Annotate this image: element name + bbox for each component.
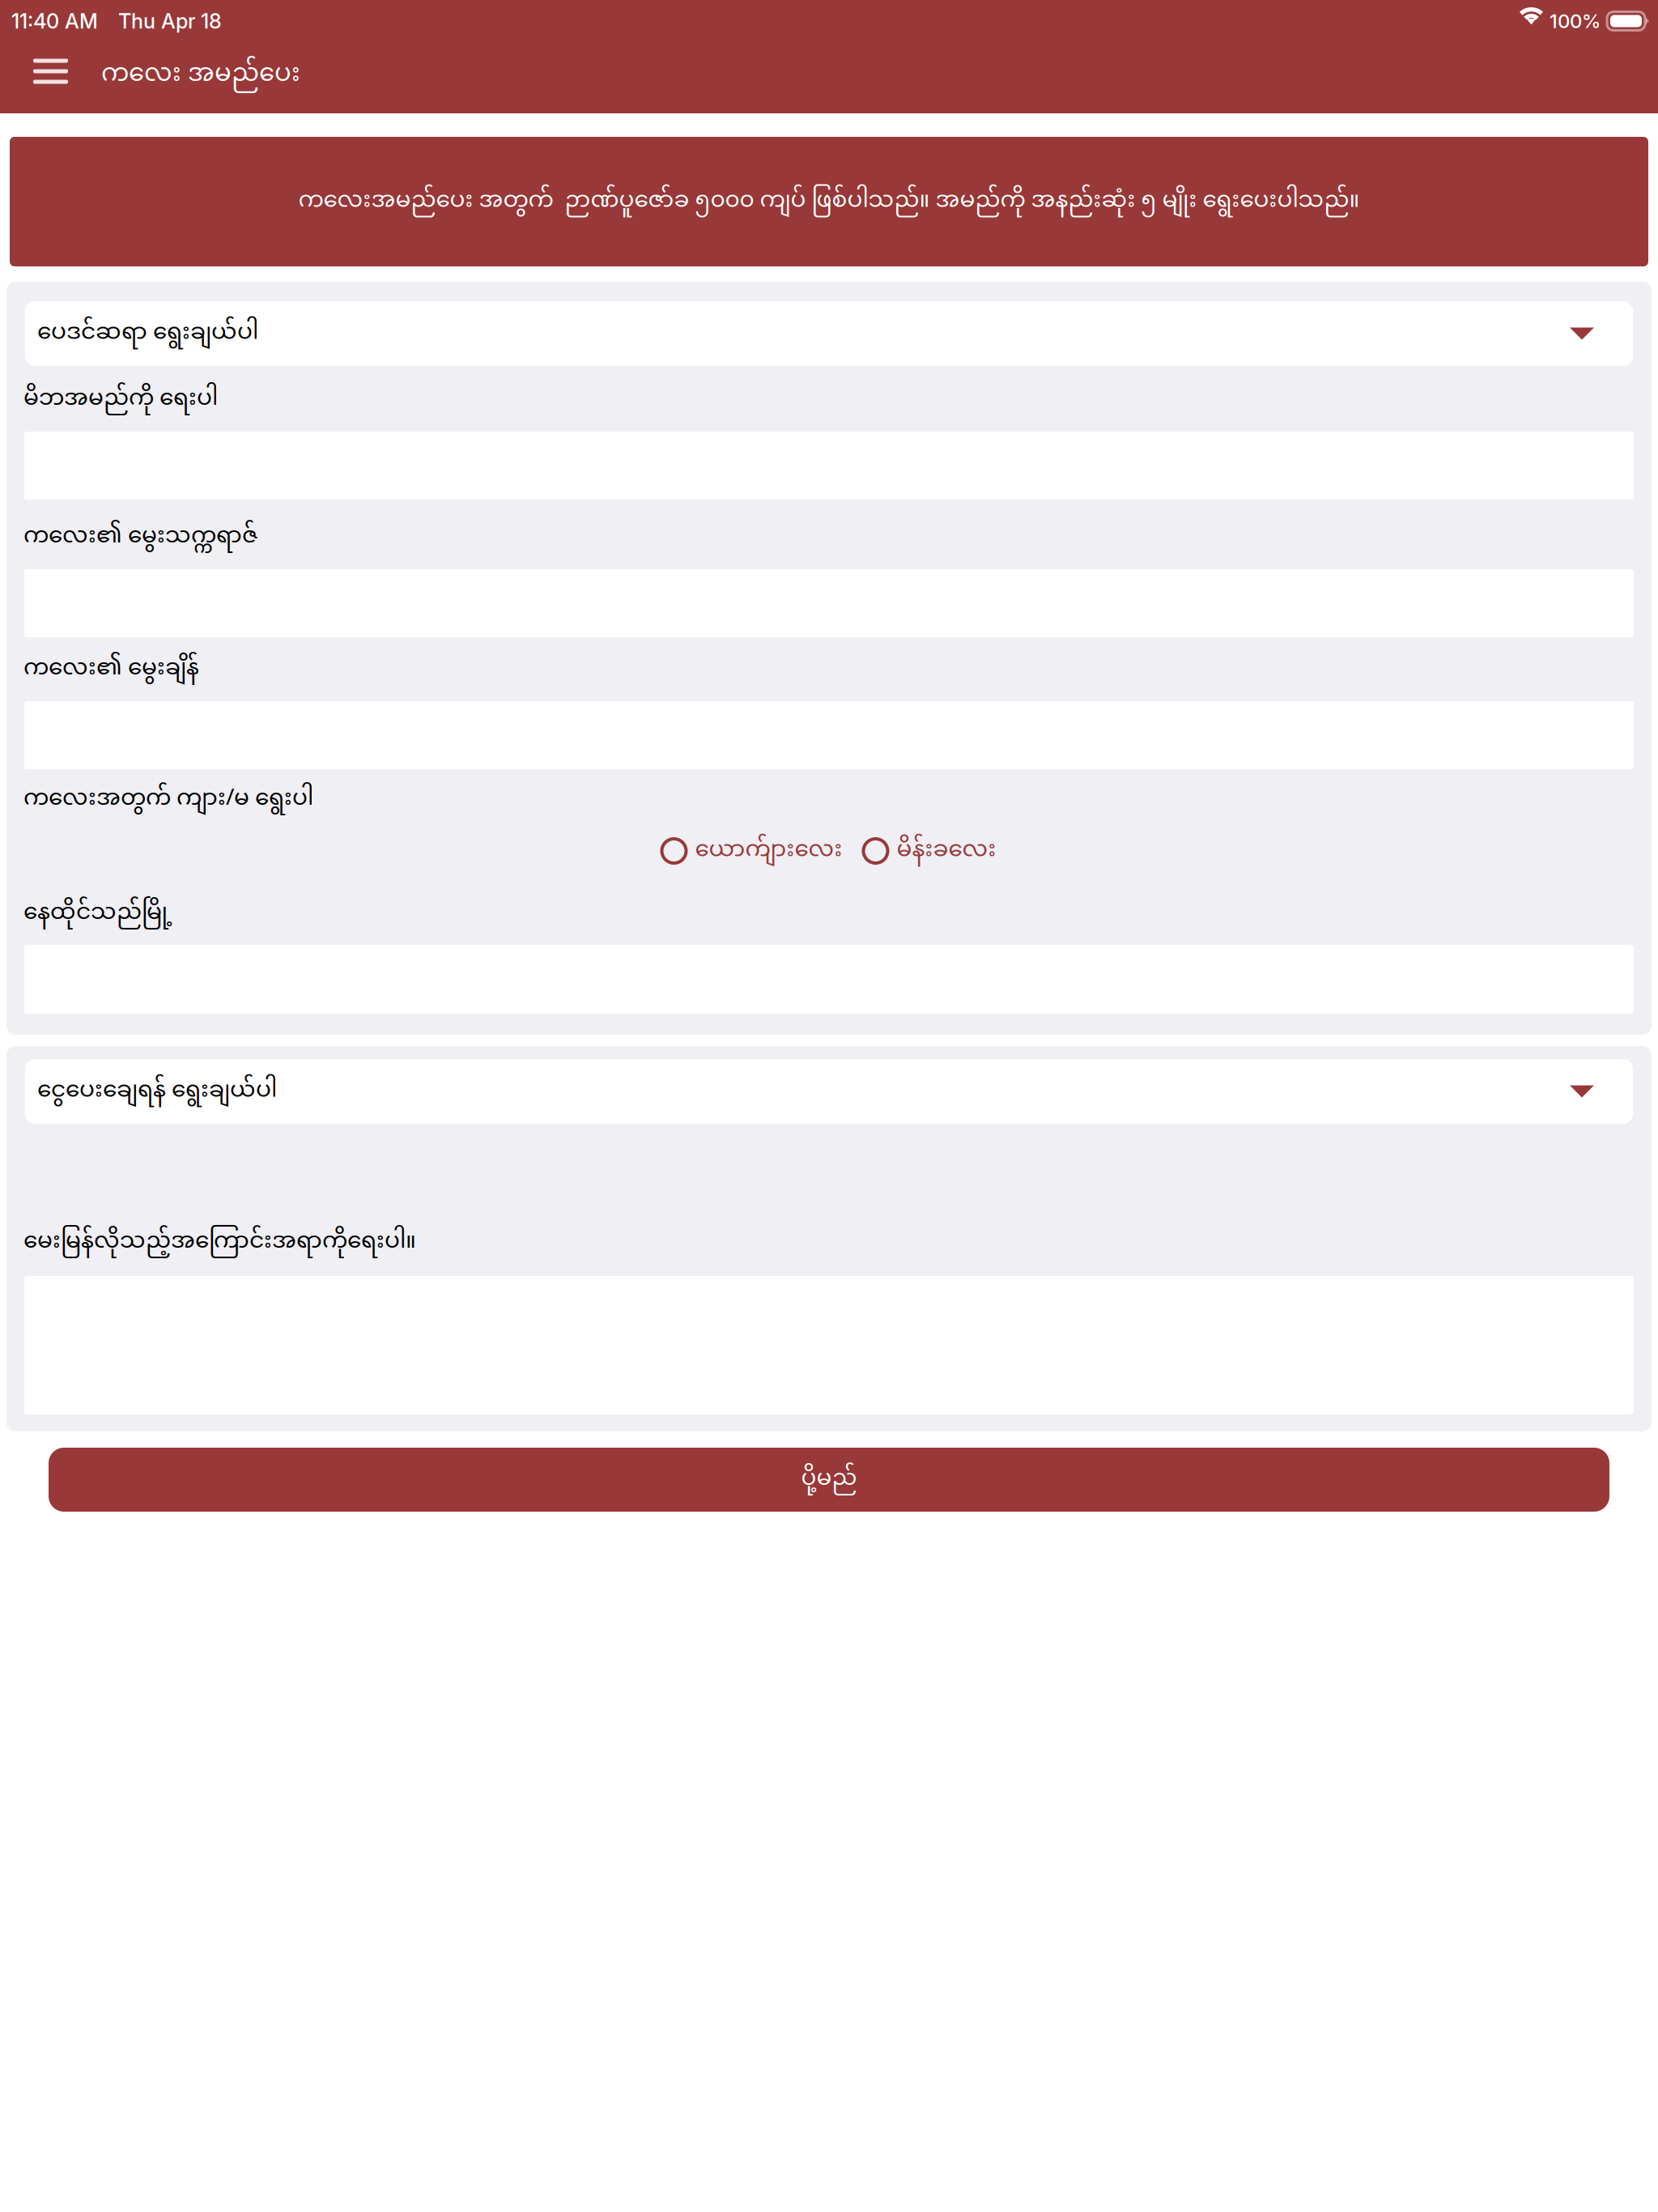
button[interactable]: ပေဒင်ဆရာ ရွေးချယ်ပါ — [6, 301, 1652, 366]
staticText: ငွေပေးချေရန် ရွေးချယ်ပါ — [37, 1067, 277, 1116]
staticText: Thu Apr 18 — [118, 9, 222, 34]
staticText: 11:40 AM — [11, 9, 98, 34]
staticText: မိဘအမည်ကို ရေးပါ — [23, 375, 218, 424]
button[interactable]: ငွေပေးချေရန် ရွေးချယ်ပါ — [6, 1059, 1652, 1124]
staticText: မိန်းခလေး — [897, 826, 996, 876]
button[interactable]: ပို့မည် — [0, 1448, 1658, 1512]
staticText: ပေဒင်ဆရာ ရွေးချယ်ပါ — [37, 309, 258, 358]
staticText: ကလေး အမည်ပေး — [101, 48, 300, 102]
button[interactable]: Menu — [17, 42, 84, 113]
staticText: မေးမြန်လိုသည့်အကြောင်းအရာကိုရေးပါ။ — [23, 1218, 416, 1267]
button[interactable]: ယောက်ျားလေး — [662, 826, 842, 876]
button[interactable]: မိန်းခလေး — [863, 826, 996, 876]
staticText: 100% — [1550, 9, 1601, 33]
staticText: ယောက်ျားလေး — [695, 826, 842, 876]
staticText: ပို့မည် — [801, 1455, 857, 1504]
staticText: နေထိုင်သည်မြို့ — [23, 889, 172, 939]
staticText: ကလေး၏ မွေးချိန် — [23, 644, 199, 694]
staticText: ကလေးအတွက် ကျား/မ ရွေးပါ — [23, 775, 313, 824]
staticText: ကလေးအမည်ပေး အတွက် ဉာဏ်ပူဇော်ခ ၅၀၀၀ ကျပ် … — [298, 177, 1360, 226]
staticText: ကလေး၏ မွေးသက္ကရာဇ် — [23, 513, 257, 562]
